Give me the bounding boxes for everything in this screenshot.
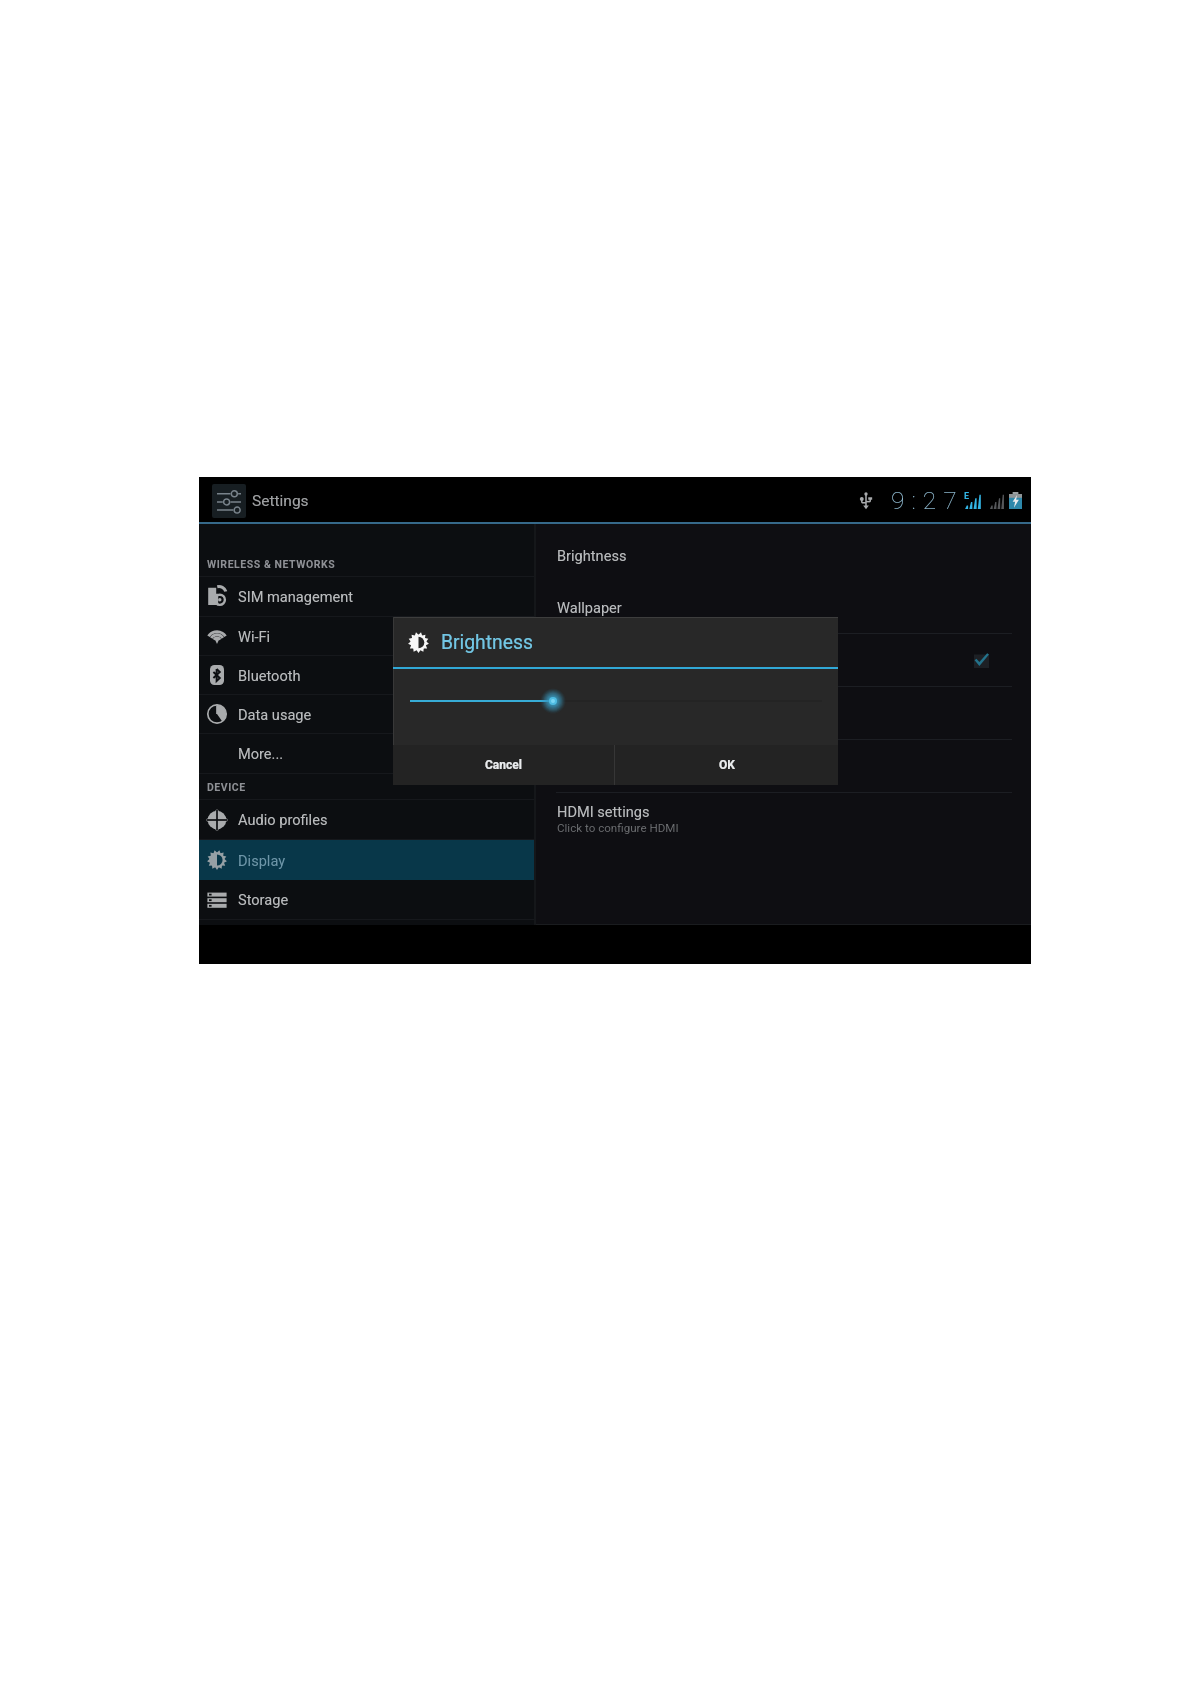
button[interactable]: System status: 9:27, USB connected, batt… [850,479,1031,522]
staticText: Brightness [441,631,533,654]
button[interactable]: Wi-Fi [199,617,534,655]
staticText: Display [238,852,286,869]
button[interactable]: Brightness [536,529,1031,582]
staticText: Cancel [485,758,522,772]
staticText: DEVICE [207,781,246,793]
button[interactable]: Settings [212,484,246,518]
staticText: Sleep [557,705,593,722]
button[interactable]: SIM management [199,577,534,616]
button[interactable]: Sleep [536,687,1031,739]
staticText: HDMI settings [557,803,650,820]
button[interactable]: Cancel [393,745,614,785]
staticText: More... [238,745,284,762]
staticText: Audio profiles [238,811,328,828]
staticText: WIRELESS & NETWORKS [207,558,336,570]
staticText: 9:27 [891,486,964,515]
button[interactable]: Daydream [536,740,1031,792]
staticText: Auto-rotate screen [557,652,677,669]
staticText: Click to configure HDMI [557,821,679,835]
button[interactable]: Brightness level slider [393,669,838,745]
staticText: Wi-Fi [238,628,271,645]
staticText: Data usage [238,706,312,723]
staticText: E [964,491,970,502]
staticText: Wallpaper [557,599,622,616]
staticText: Brightness [557,547,627,564]
staticText: Storage [238,891,289,908]
button[interactable]: Bluetooth [199,656,534,694]
staticText: SIM management [238,588,354,605]
staticText: Settings [252,492,309,510]
button[interactable]: Data usage [199,695,534,733]
button[interactable]: Auto-rotate screen [536,634,1031,686]
button[interactable]: Display [199,840,534,880]
button[interactable]: More... [199,734,534,773]
button[interactable]: HDMI settings [536,793,1031,845]
button[interactable]: Wallpaper [536,582,1031,633]
staticText: Bluetooth [238,667,301,684]
staticText: OK [719,758,735,772]
button[interactable]: OK [615,745,838,785]
button[interactable]: Storage [199,880,534,919]
button[interactable]: Audio profiles [199,800,534,839]
